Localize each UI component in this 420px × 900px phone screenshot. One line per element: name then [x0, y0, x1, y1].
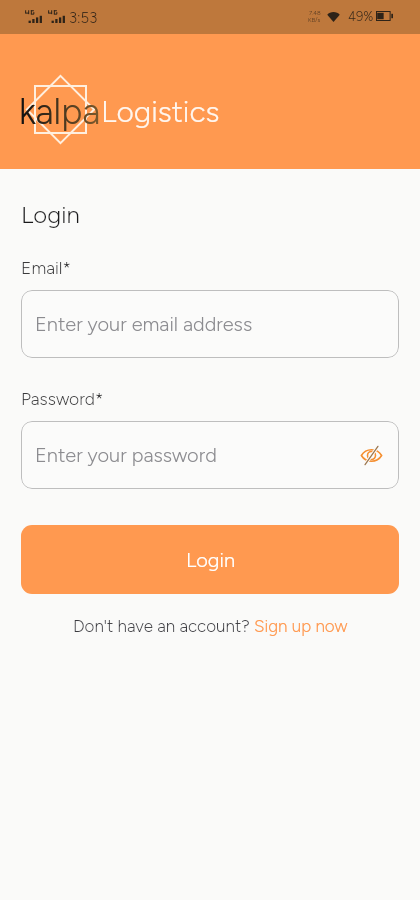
staticText: Password*: [21, 388, 104, 409]
staticText: 3:53: [69, 9, 98, 27]
button[interactable]: Show password: [356, 440, 386, 470]
staticText: kalpa: [19, 90, 101, 133]
staticText: Login: [21, 200, 80, 229]
staticText: Enter your email address: [35, 312, 253, 336]
staticText: KB/s: [308, 16, 321, 23]
staticText: Logistics: [101, 93, 220, 129]
staticText: Email*: [21, 257, 71, 278]
button[interactable]: Enter your password: [21, 421, 399, 489]
staticText: 7.48: [309, 9, 321, 16]
staticText: Login: [186, 548, 235, 572]
staticText: Don't have an account?: [73, 616, 254, 636]
button[interactable]: Login: [21, 525, 399, 594]
staticText: Sign up now: [254, 616, 348, 636]
button[interactable]: Sign up now: [254, 616, 348, 636]
staticText: Enter your password: [35, 443, 217, 467]
button[interactable]: Enter your email address: [21, 290, 399, 358]
staticText: 49%: [348, 9, 374, 25]
